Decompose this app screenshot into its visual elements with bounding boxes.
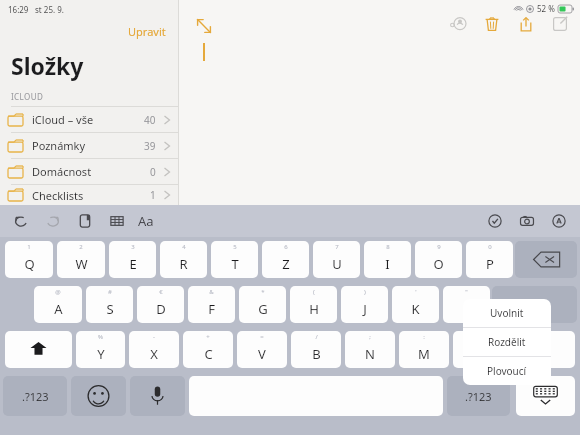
button[interactable]: 8	[364, 241, 411, 278]
button[interactable]: Camera	[518, 212, 536, 230]
button[interactable]: Checklists	[0, 185, 178, 205]
staticText: H	[309, 300, 319, 318]
staticText: A	[54, 300, 63, 318]
button[interactable]: 3	[109, 241, 156, 278]
button[interactable]: Share	[516, 14, 536, 34]
button[interactable]: -	[129, 331, 179, 368]
button[interactable]: Uvolnit	[463, 299, 551, 327]
staticText: ICLOUD	[11, 91, 44, 102]
button[interactable]: 1	[5, 241, 53, 278]
button[interactable]: Shift	[5, 331, 72, 368]
button[interactable]: &	[188, 286, 235, 323]
staticText: Plovoucí	[487, 364, 527, 378]
button[interactable]: Domácnost	[0, 159, 178, 184]
staticText: 8	[386, 243, 390, 251]
button[interactable]: .?123	[3, 376, 67, 416]
staticText: R	[179, 255, 188, 273]
staticText: V	[258, 345, 266, 363]
button[interactable]: ,	[453, 331, 503, 368]
button[interactable]: Undo	[12, 212, 30, 230]
staticText: €	[159, 288, 163, 296]
staticText: K	[411, 300, 420, 318]
staticText: 1	[27, 243, 31, 251]
button[interactable]: 5	[211, 241, 258, 278]
button[interactable]: Shift right	[507, 331, 575, 368]
button[interactable]: #	[86, 286, 133, 323]
button[interactable]: Add people	[448, 14, 468, 34]
button[interactable]: Expand note	[194, 16, 214, 36]
button[interactable]: Markup	[550, 212, 568, 230]
button[interactable]: Aa	[138, 212, 154, 230]
button[interactable]: 4	[160, 241, 207, 278]
staticText: 9	[437, 243, 441, 251]
staticText: F	[208, 300, 215, 318]
staticText: U	[332, 255, 342, 273]
button[interactable]: /	[291, 331, 341, 368]
staticText: 3	[131, 243, 135, 251]
button[interactable]: Delete	[482, 14, 502, 34]
button[interactable]: 6	[262, 241, 309, 278]
staticText: Poznámky	[32, 138, 86, 153]
button[interactable]: Return	[492, 286, 577, 323]
button[interactable]: Dictation	[130, 376, 185, 416]
button[interactable]: 7	[313, 241, 360, 278]
staticText: 4	[182, 243, 186, 251]
button[interactable]: 2	[57, 241, 105, 278]
button[interactable]: New note	[550, 14, 570, 34]
button[interactable]: :	[399, 331, 449, 368]
button[interactable]: ;	[345, 331, 395, 368]
staticText: Uvolnit	[490, 306, 524, 320]
button[interactable]: €	[137, 286, 184, 323]
button[interactable]: @	[34, 286, 82, 323]
button[interactable]: '	[392, 286, 439, 323]
staticText: D	[156, 300, 166, 318]
staticText: '	[415, 288, 417, 296]
staticText: .?123	[465, 389, 492, 404]
button[interactable]: Emoji	[71, 376, 126, 416]
button[interactable]: Hide keyboard	[516, 376, 575, 416]
button[interactable]: Upravit	[0, 18, 178, 44]
button[interactable]: Plovoucí	[463, 357, 551, 385]
button[interactable]: Rozdělit	[463, 328, 551, 356]
staticText: "	[465, 288, 468, 296]
button[interactable]: Poznámky	[0, 133, 178, 158]
button[interactable]: Checklist	[76, 212, 94, 230]
button[interactable]: )	[341, 286, 388, 323]
staticText: Domácnost	[32, 164, 92, 179]
staticText: 7	[335, 243, 339, 251]
button[interactable]: +	[183, 331, 233, 368]
staticText: Složky	[11, 50, 84, 81]
button[interactable]: Mark complete	[486, 212, 504, 230]
staticText: M	[418, 345, 430, 363]
button[interactable]: "	[443, 286, 490, 323]
button[interactable]: (	[290, 286, 337, 323]
staticText: P	[486, 255, 494, 273]
button[interactable]: iCloud – vše	[0, 107, 178, 132]
button[interactable]: .?123	[447, 376, 510, 416]
button[interactable]: 9	[415, 241, 462, 278]
staticText: X	[150, 345, 158, 363]
staticText: #	[108, 288, 112, 296]
staticText: 2	[79, 243, 83, 251]
staticText: st 25. 9.	[35, 4, 64, 15]
button[interactable]: Table	[108, 212, 126, 230]
staticText: 39	[144, 139, 156, 153]
button[interactable]: =	[237, 331, 287, 368]
staticText: ;	[369, 333, 371, 341]
staticText: S	[106, 300, 114, 318]
button[interactable]: 0	[466, 241, 513, 278]
staticText: Rozdělit	[488, 335, 526, 349]
staticText: W	[75, 255, 88, 273]
staticText: Q	[24, 255, 35, 273]
button[interactable]: Backspace	[515, 241, 577, 278]
staticText: J	[363, 300, 367, 318]
button[interactable]: %	[76, 331, 125, 368]
staticText: Z	[282, 255, 290, 273]
button[interactable]: *	[239, 286, 286, 323]
staticText: B	[312, 345, 321, 363]
staticText: )	[364, 288, 366, 296]
button[interactable]: Redo	[44, 212, 62, 230]
